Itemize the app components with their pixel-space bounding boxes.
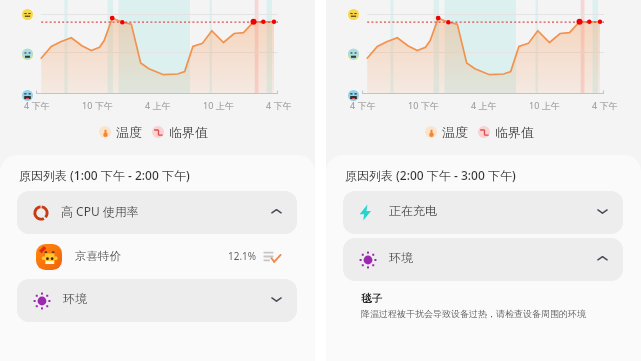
staticText: 10 下午 — [82, 99, 113, 111]
staticText: 降温过程被干扰会导致设备过热，请检查设备周围的环境 — [361, 308, 586, 319]
button[interactable]: 环境 — [343, 238, 623, 281]
staticText: 4 上午 — [145, 99, 171, 111]
staticText: 10 上午 — [203, 99, 234, 111]
staticText: 温度 — [442, 124, 468, 140]
staticText: 4 下午 — [350, 99, 376, 111]
button[interactable]: 高 CPU 使用率 — [17, 191, 297, 234]
other: Details — [263, 251, 281, 262]
staticText: 4 上午 — [471, 99, 497, 111]
staticText: 4 下午 — [592, 99, 618, 111]
staticText: 毯子 — [361, 292, 382, 305]
staticText: 京喜特价 — [75, 249, 121, 263]
button[interactable]: 环境 — [17, 279, 297, 322]
staticText: 高 CPU 使用率 — [61, 203, 139, 219]
staticText: 正在充电 — [389, 203, 437, 218]
staticText: 原因列表 (1:00 下午 - 2:00 下午) — [19, 167, 190, 183]
staticText: 原因列表 (2:00 下午 - 3:00 下午) — [345, 167, 516, 183]
staticText: 临界值 — [169, 124, 208, 140]
button[interactable]: 京喜特价 — [17, 238, 297, 275]
staticText: 4 下午 — [266, 99, 292, 111]
staticText: 10 上午 — [529, 99, 560, 111]
staticText: 温度 — [116, 124, 142, 140]
staticText: 环境 — [63, 291, 87, 306]
staticText: 4 下午 — [24, 99, 50, 111]
staticText: 临界值 — [495, 124, 534, 140]
staticText: 10 下午 — [408, 99, 439, 111]
button[interactable]: 正在充电 — [343, 191, 623, 234]
staticText: 环境 — [389, 250, 413, 265]
staticText: 12.1% — [228, 249, 257, 263]
